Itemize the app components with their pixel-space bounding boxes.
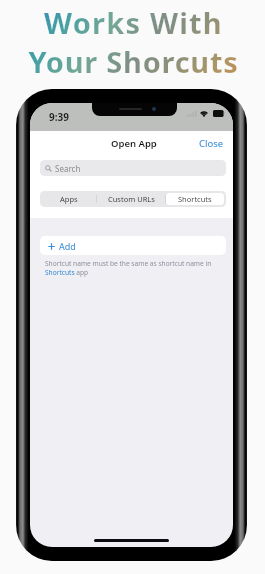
staticText: Add <box>59 240 76 252</box>
staticText: Open App <box>111 137 157 150</box>
staticText: Custom URLs <box>108 194 155 204</box>
staticText: Apps <box>60 194 78 204</box>
button[interactable]: Shortcuts <box>166 193 224 205</box>
button[interactable]: Apps <box>42 193 96 205</box>
button[interactable]: Search <box>40 160 226 176</box>
staticText: Close <box>199 137 224 150</box>
staticText: Shortcut name must be the same as shortc… <box>45 259 218 277</box>
staticText: Shortcuts <box>178 194 212 204</box>
staticText: 9:39 <box>49 110 69 124</box>
button[interactable]: Close <box>190 132 233 155</box>
staticText: Works With <box>44 3 223 42</box>
staticText: Search <box>55 163 81 174</box>
button[interactable]: Add <box>40 236 226 255</box>
staticText: Your Shorcuts <box>28 42 239 81</box>
button[interactable]: Custom URLs <box>97 193 165 205</box>
